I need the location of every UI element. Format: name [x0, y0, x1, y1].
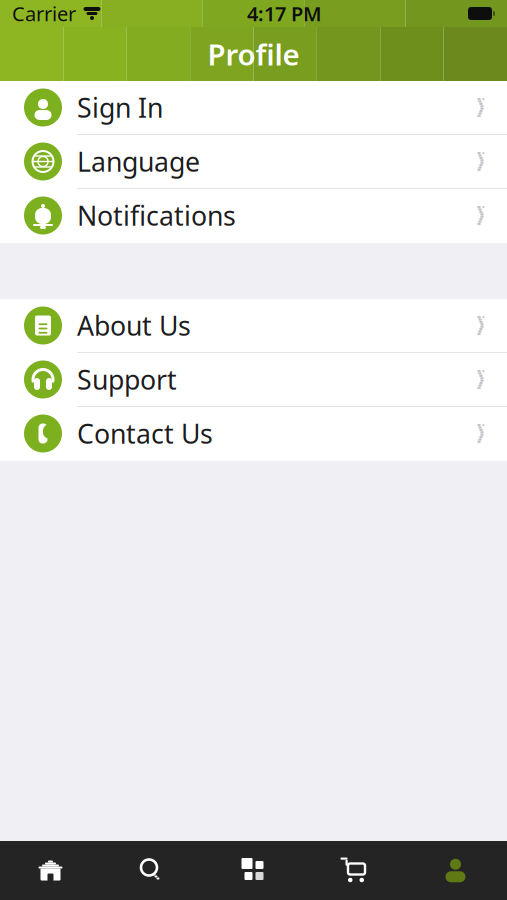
- staticText: Carrier: [12, 0, 76, 27]
- button[interactable]: Home: [0, 841, 101, 900]
- button[interactable]: Categories: [202, 841, 303, 900]
- staticText: Notifications: [77, 198, 236, 233]
- button[interactable]: About Us: [0, 299, 507, 353]
- staticText: Profile: [207, 34, 299, 73]
- staticText: Contact Us: [77, 416, 213, 451]
- button[interactable]: Profile: [404, 841, 507, 900]
- staticText: Sign In: [77, 90, 163, 125]
- staticText: 4:17 PM: [247, 0, 322, 27]
- staticText: Support: [77, 362, 177, 397]
- button[interactable]: Cart: [303, 841, 404, 900]
- staticText: About Us: [77, 308, 191, 343]
- button[interactable]: Notifications: [0, 189, 507, 243]
- button[interactable]: Contact Us: [0, 407, 507, 461]
- button[interactable]: Sign In: [0, 81, 507, 135]
- button[interactable]: Search: [101, 841, 202, 900]
- button[interactable]: Language: [0, 135, 507, 189]
- button[interactable]: Support: [0, 353, 507, 407]
- staticText: Language: [77, 144, 200, 179]
